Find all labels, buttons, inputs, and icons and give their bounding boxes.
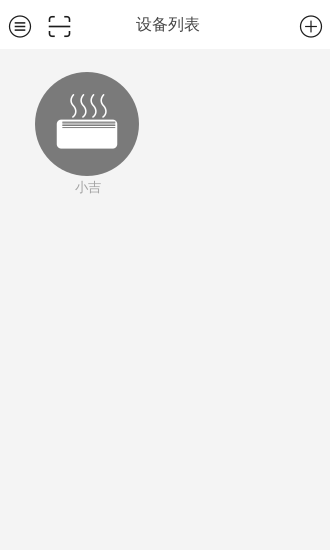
button[interactable]: Menu <box>0 0 40 49</box>
button[interactable]: 小吉 <box>35 72 139 195</box>
button[interactable]: Add device <box>292 0 330 49</box>
staticText: 设备列表 <box>136 15 200 34</box>
staticText: 小吉 <box>75 179 101 195</box>
button[interactable]: Scan code <box>40 0 79 49</box>
